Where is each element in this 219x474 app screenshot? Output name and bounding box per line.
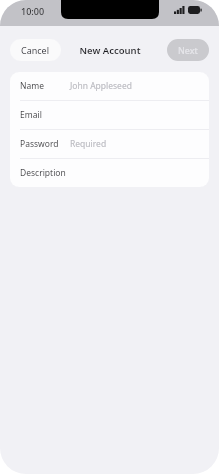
staticText: John Appleseed bbox=[70, 80, 132, 92]
staticText: Name bbox=[20, 80, 44, 92]
staticText: Email bbox=[20, 109, 42, 121]
button[interactable]: Name bbox=[10, 72, 209, 100]
staticText: Required bbox=[70, 138, 107, 150]
staticText: Password bbox=[20, 138, 59, 150]
button[interactable]: Password bbox=[10, 130, 209, 158]
staticText: Cancel bbox=[21, 44, 50, 56]
button[interactable]: Description bbox=[10, 159, 209, 187]
button[interactable]: Next bbox=[167, 39, 209, 61]
button[interactable]: Cancel bbox=[10, 39, 61, 61]
staticText: Next bbox=[178, 44, 198, 56]
staticText: 10:00 bbox=[21, 5, 45, 17]
staticText: Description bbox=[20, 167, 66, 179]
staticText: New Account bbox=[79, 44, 141, 57]
button[interactable]: Email bbox=[10, 101, 209, 129]
